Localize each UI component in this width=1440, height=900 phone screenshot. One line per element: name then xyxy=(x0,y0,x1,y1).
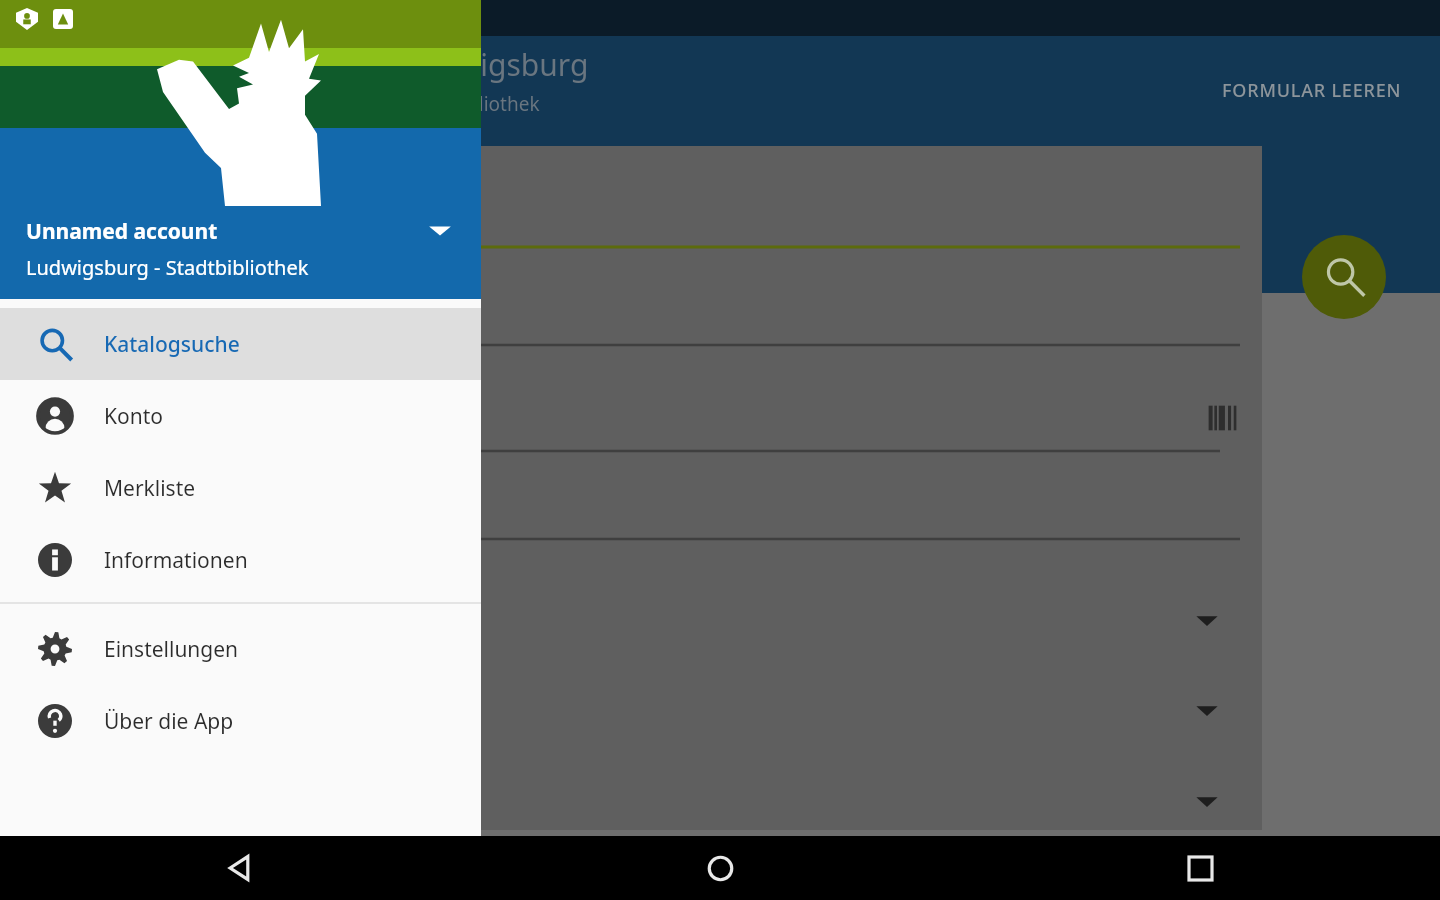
staticText: FORMULAR LEEREN xyxy=(1222,78,1402,103)
button[interactable]: Konto xyxy=(0,380,481,452)
button[interactable]: FORMULAR LEEREN xyxy=(1204,68,1420,113)
button[interactable]: Auswahl öffnen xyxy=(1188,782,1226,820)
button[interactable]: Auswahl öffnen xyxy=(1188,601,1226,639)
staticText: Merkliste xyxy=(104,474,196,503)
button[interactable]: Suchen xyxy=(1302,235,1386,319)
button[interactable]: Über die App xyxy=(0,685,481,757)
button[interactable]: Barcode scannen xyxy=(1206,396,1250,440)
staticText: Einstellungen xyxy=(104,635,239,664)
button[interactable]: Katalogsuche xyxy=(0,308,481,380)
staticText: Informationen xyxy=(104,546,248,575)
staticText: Ludwigsburg - Stadtbibliothek xyxy=(26,254,309,281)
staticText: Ludwigsburg xyxy=(404,44,589,85)
button[interactable]: Auswahl öffnen xyxy=(1188,691,1226,729)
button[interactable]: Zurück xyxy=(213,841,267,895)
staticText: Über die App xyxy=(104,707,234,736)
button[interactable]: Unnamed account xyxy=(0,207,481,299)
button[interactable]: Einstellungen xyxy=(0,613,481,685)
button[interactable]: Startbildschirm xyxy=(693,841,747,895)
button[interactable]: Konto wechseln xyxy=(423,213,457,247)
staticText: Stadtbibliothek xyxy=(404,91,540,117)
staticText: Unnamed account xyxy=(26,217,218,246)
staticText: Konto xyxy=(104,402,163,431)
button[interactable]: Übersicht xyxy=(1173,841,1227,895)
button[interactable]: Informationen xyxy=(0,524,481,596)
staticText: Katalogsuche xyxy=(104,330,240,359)
button[interactable]: Merkliste xyxy=(0,452,481,524)
